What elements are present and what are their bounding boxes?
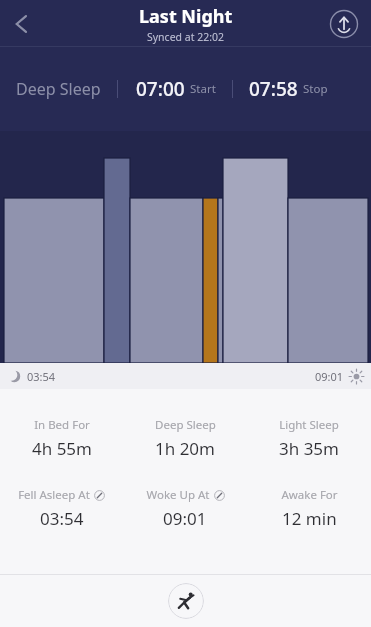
staticText: Synced at 22:02 [147, 30, 225, 44]
staticText: 3h 35m [279, 437, 339, 460]
other: Edit Fell Asleep At [94, 490, 105, 501]
staticText: 09:01 [315, 369, 344, 384]
staticText: 1h 20m [155, 437, 215, 460]
staticText: In Bed For [34, 417, 90, 433]
staticText: Awake For [281, 487, 338, 503]
staticText: 07:00 [136, 76, 185, 102]
button[interactable]: Fell Asleep At [0, 487, 123, 530]
staticText: Deep Sleep [155, 417, 216, 433]
staticText: Last Night [139, 4, 233, 29]
button[interactable]: Awake For [247, 487, 371, 530]
staticText: 03:54 [40, 507, 84, 530]
staticText: Deep Sleep [16, 78, 101, 100]
staticText: 09:01 [163, 507, 207, 530]
staticText: 12 min [282, 507, 337, 530]
button[interactable]: Woke Up At [123, 487, 247, 530]
other: Edit Woke Up At [214, 490, 225, 501]
button[interactable]: Back [2, 4, 42, 44]
staticText: Start [190, 81, 216, 97]
button[interactable]: In Bed For [0, 417, 123, 460]
staticText: 4h 55m [32, 437, 92, 460]
staticText: 03:54 [27, 369, 56, 384]
staticText: Stop [303, 81, 328, 97]
button[interactable]: Share [329, 9, 359, 39]
button[interactable]: Light Sleep [247, 417, 371, 460]
staticText: Light Sleep [279, 417, 339, 433]
staticText: Woke Up At [146, 487, 210, 503]
staticText: Fell Asleep At [18, 487, 90, 503]
button[interactable]: Deep Sleep [123, 417, 247, 460]
button[interactable]: Activity [168, 583, 204, 619]
staticText: 07:58 [249, 76, 298, 102]
